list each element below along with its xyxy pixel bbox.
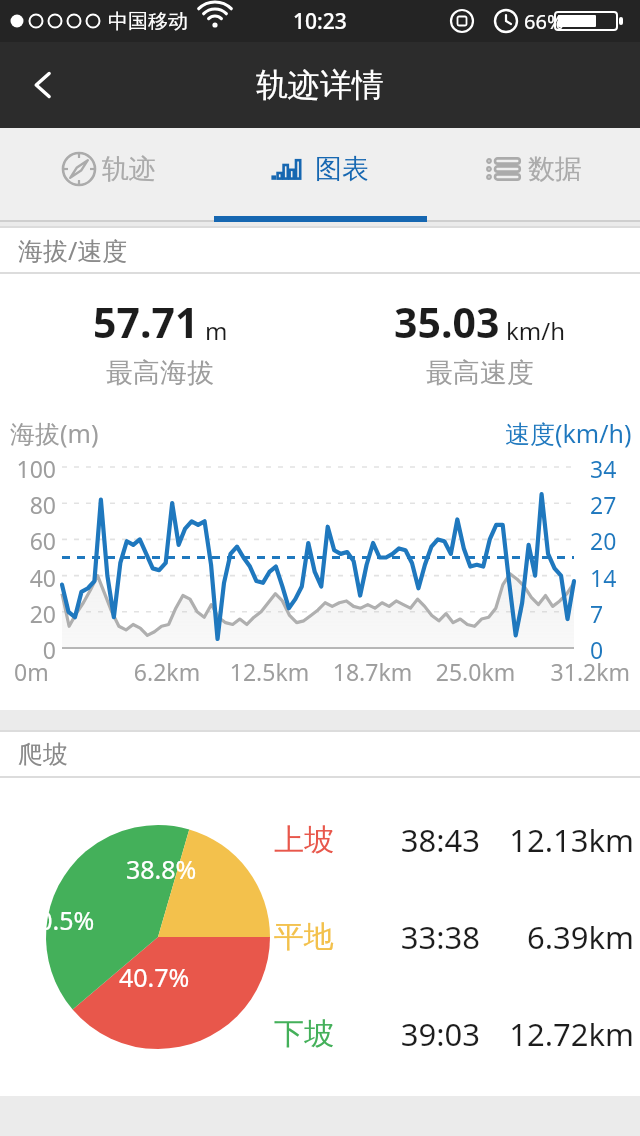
button[interactable]: 平地 [274,902,640,972]
staticText: 31.2km [527,656,630,687]
staticText: 25.0km [424,656,527,687]
staticText: 0m [14,656,116,687]
staticText: 33:38 [368,916,480,958]
staticText: 海拔/速度 [18,233,128,267]
staticText: 80 [0,489,56,520]
staticText: 35.03 [394,294,500,350]
staticText: 图表 [315,152,369,186]
staticText: m [205,314,228,347]
staticText: 6.2km [116,656,218,687]
staticText: 60 [0,525,56,556]
staticText: 66% [524,8,564,35]
staticText: 14 [590,562,640,593]
button[interactable]: 57.71 [0,274,320,410]
staticText: 12.72km [480,1013,634,1055]
staticText: 6.39km [480,916,634,958]
staticText: 40 [0,562,56,593]
staticText: 20 [590,525,640,556]
staticText: 57.71 [93,294,199,350]
staticText: 数据 [528,152,582,186]
staticText: 20 [0,598,56,629]
staticText: 平地 [274,918,368,956]
staticText: 18.7km [321,656,424,687]
button[interactable]: 数据 [427,128,640,222]
staticText: 中国移动 [108,9,188,34]
staticText: 0 [0,634,56,665]
staticText: 12.5km [218,656,321,687]
button[interactable]: 轨迹 [0,128,214,222]
staticText: 7 [590,598,640,629]
staticText: 下坡 [274,1015,368,1053]
button[interactable]: 返回 [0,42,86,128]
button[interactable]: 上坡 [274,805,640,875]
staticText: 海拔(m) [10,416,99,450]
staticText: 10:23 [293,7,347,36]
staticText: km/h [506,314,566,347]
staticText: 40.7% [119,960,190,994]
button[interactable]: 35.03 [320,274,640,410]
staticText: 爬坡 [18,739,68,770]
staticText: 0 [590,634,640,665]
staticText: 轨迹 [102,152,156,186]
staticText: 100 [0,453,56,484]
button[interactable]: 下坡 [274,999,640,1069]
staticText: 39:03 [368,1013,480,1055]
staticText: 34 [590,453,640,484]
staticText: 轨迹详情 [256,65,384,105]
button[interactable]: 图表 [214,128,427,222]
staticText: 速度(km/h) [505,416,632,450]
staticText: 12.13km [480,819,634,861]
staticText: 38:43 [368,819,480,861]
staticText: 38.8% [126,852,197,886]
staticText: 最高海拔 [106,356,214,390]
staticText: 上坡 [274,821,368,859]
staticText: 20.5% [24,903,95,937]
staticText: 27 [590,489,640,520]
staticText: 最高速度 [426,356,534,390]
